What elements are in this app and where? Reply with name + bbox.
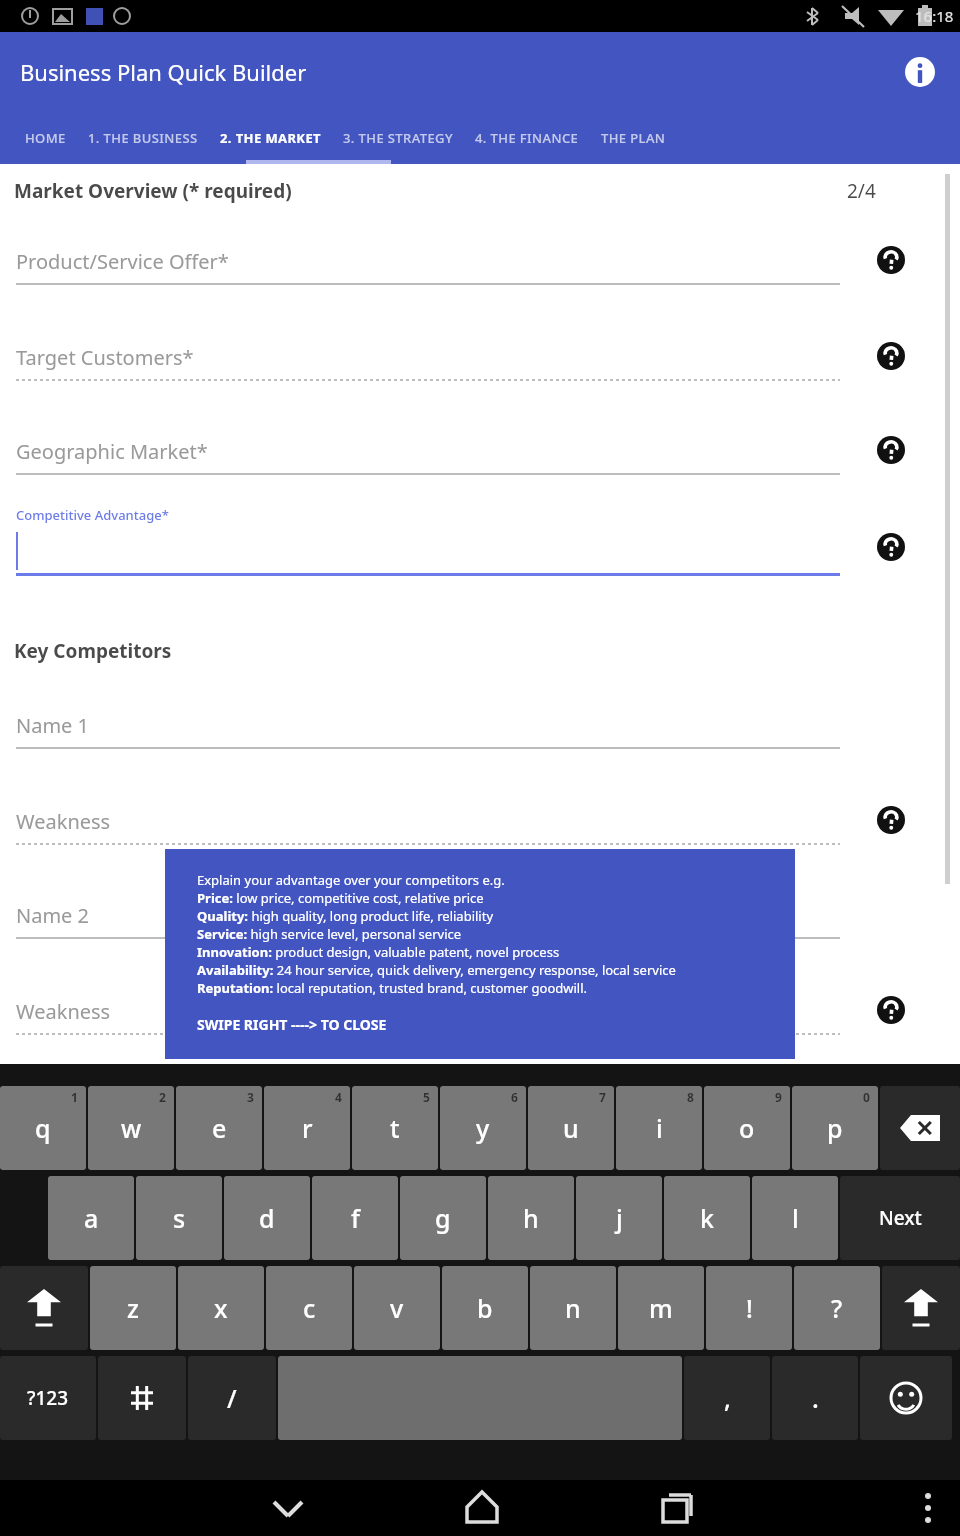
button[interactable]: s: [136, 1176, 222, 1260]
staticText: g: [435, 1201, 451, 1235]
staticText: !: [746, 1291, 753, 1325]
staticText: 2/4: [847, 178, 876, 204]
staticText: /: [227, 1381, 237, 1415]
button[interactable]: 8: [616, 1086, 702, 1170]
button[interactable]: 3. THE STRATEGY: [332, 112, 464, 164]
staticText: Innovation: product design, valuable pat…: [197, 943, 560, 961]
button[interactable]: !: [706, 1266, 792, 1350]
button[interactable]: Name 1: [16, 712, 840, 749]
button[interactable]: v: [354, 1266, 440, 1350]
button[interactable]: Backspace: [880, 1086, 960, 1170]
staticText: p: [827, 1111, 843, 1145]
button[interactable]: c: [266, 1266, 352, 1350]
staticText: ?123: [27, 1385, 69, 1411]
staticText: 3. THE STRATEGY: [343, 129, 453, 147]
staticText: h: [523, 1201, 539, 1235]
staticText: Geographic Market*: [16, 438, 208, 465]
staticText: ,: [724, 1381, 731, 1415]
button[interactable]: b: [442, 1266, 528, 1350]
button[interactable]: ?: [794, 1266, 880, 1350]
staticText: x: [214, 1291, 228, 1325]
button[interactable]: 7: [528, 1086, 614, 1170]
button[interactable]: ,: [684, 1356, 770, 1440]
staticText: t: [390, 1111, 400, 1145]
button[interactable]: 9: [704, 1086, 790, 1170]
staticText: Availability: 24 hour service, quick del…: [197, 961, 676, 979]
button[interactable]: /: [188, 1356, 276, 1440]
button[interactable]: 4. THE FINANCE: [464, 112, 590, 164]
button[interactable]: Help: [874, 339, 908, 373]
button[interactable]: Explain your advantage over your competi…: [165, 849, 795, 1059]
staticText: j: [616, 1201, 623, 1235]
button[interactable]: a: [48, 1176, 134, 1260]
staticText: Weakness: [16, 808, 111, 835]
staticText: ?: [831, 1291, 843, 1325]
staticText: Business Plan Quick Builder: [20, 57, 307, 87]
button[interactable]: THE PLAN: [590, 112, 677, 164]
button[interactable]: Change language: [98, 1356, 186, 1440]
button[interactable]: 0: [792, 1086, 878, 1170]
button[interactable]: j: [576, 1176, 662, 1260]
button[interactable]: Competitive Advantage*: [16, 506, 840, 576]
staticText: 3: [247, 1089, 254, 1105]
button[interactable]: Help: [874, 993, 908, 1027]
button[interactable]: Product/Service Offer*: [16, 248, 840, 285]
button[interactable]: 3: [176, 1086, 262, 1170]
button[interactable]: 1. THE BUSINESS: [77, 112, 209, 164]
button[interactable]: Help: [874, 803, 908, 837]
button[interactable]: 6: [440, 1086, 526, 1170]
staticText: 9: [775, 1089, 782, 1105]
staticText: Product/Service Offer*: [16, 248, 229, 275]
button[interactable]: g: [400, 1176, 486, 1260]
button[interactable]: Weakness: [16, 998, 840, 1035]
button[interactable]: x: [178, 1266, 264, 1350]
button[interactable]: l: [752, 1176, 838, 1260]
staticText: Quality: high quality, long product life…: [197, 907, 494, 925]
button[interactable]: z: [90, 1266, 176, 1350]
button[interactable]: Help: [874, 530, 908, 564]
button[interactable]: 5: [352, 1086, 438, 1170]
button[interactable]: 2. THE MARKET: [209, 112, 332, 164]
staticText: 4: [335, 1089, 342, 1105]
button[interactable]: Next: [840, 1176, 960, 1260]
staticText: SWIPE RIGHT ----> TO CLOSE: [197, 1015, 387, 1034]
button[interactable]: 4: [264, 1086, 350, 1170]
button[interactable]: Shift: [882, 1266, 960, 1350]
staticText: q: [35, 1111, 51, 1145]
button[interactable]: Shift: [0, 1266, 88, 1350]
button[interactable]: .: [772, 1356, 858, 1440]
button[interactable]: Help: [874, 243, 908, 277]
staticText: Market Overview (* required): [14, 178, 292, 204]
button[interactable]: Target Customers*: [16, 344, 840, 381]
staticText: a: [84, 1201, 99, 1235]
staticText: y: [476, 1111, 490, 1145]
button[interactable]: ?123: [0, 1356, 96, 1440]
staticText: Key Competitors: [14, 638, 172, 664]
staticText: 1. THE BUSINESS: [88, 129, 198, 147]
staticText: o: [739, 1111, 755, 1145]
staticText: Name 2: [16, 902, 90, 929]
staticText: i: [656, 1111, 663, 1145]
button[interactable]: 2: [88, 1086, 174, 1170]
button[interactable]: Name 2: [16, 902, 840, 939]
button[interactable]: Help: [874, 433, 908, 467]
button[interactable]: h: [488, 1176, 574, 1260]
staticText: 7: [599, 1089, 606, 1105]
staticText: Explain your advantage over your competi…: [197, 871, 505, 889]
button[interactable]: Info: [898, 50, 942, 94]
button[interactable]: 1: [0, 1086, 86, 1170]
staticText: m: [649, 1291, 673, 1325]
button[interactable]: Emoji: [860, 1356, 952, 1440]
button[interactable]: d: [224, 1176, 310, 1260]
button[interactable]: HOME: [14, 112, 77, 164]
button[interactable]: f: [312, 1176, 398, 1260]
button[interactable]: m: [618, 1266, 704, 1350]
button[interactable]: Weakness: [16, 808, 840, 845]
button[interactable]: n: [530, 1266, 616, 1350]
button[interactable]: Geographic Market*: [16, 438, 840, 475]
staticText: w: [121, 1111, 142, 1145]
staticText: Service: high service level, personal se…: [197, 925, 462, 943]
button[interactable]: k: [664, 1176, 750, 1260]
staticText: v: [390, 1291, 404, 1325]
